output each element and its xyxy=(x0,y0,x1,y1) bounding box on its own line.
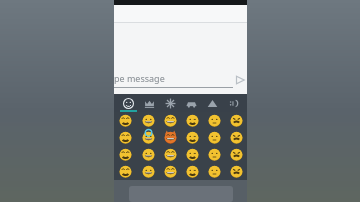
button[interactable]: Emoji 0 xyxy=(114,112,137,129)
button[interactable]: Emoji 18 xyxy=(114,163,137,180)
button[interactable]: Emoji 11 xyxy=(225,129,247,146)
button[interactable]: Emoji 22 xyxy=(203,163,225,180)
button[interactable]: Emoji 15 xyxy=(181,146,203,163)
button[interactable]: Emoji 19 xyxy=(137,163,159,180)
button[interactable]: Emoji 16 xyxy=(203,146,225,163)
button[interactable]: Emoji 14 xyxy=(159,146,181,163)
button[interactable]: Emoji 7 xyxy=(137,129,159,146)
button[interactable]: Emoji 20 xyxy=(159,163,181,180)
button[interactable]: Emoji category travel xyxy=(181,94,202,112)
button[interactable]: Emoji 17 xyxy=(225,146,247,163)
button[interactable]: Emoji 1 xyxy=(137,112,159,129)
button[interactable]: pe message xyxy=(114,68,247,92)
button[interactable]: Emoji 2 xyxy=(159,112,181,129)
button[interactable]: Emoticons xyxy=(223,94,244,112)
button[interactable]: Emoji 23 xyxy=(225,163,247,180)
button[interactable]: Emoji 8 xyxy=(159,129,181,146)
button[interactable]: Emoji 5 xyxy=(225,112,247,129)
staticText: pe message xyxy=(114,72,165,84)
button[interactable]: Emoji 3 xyxy=(181,112,203,129)
button[interactable]: Emoji category smileys xyxy=(117,94,139,112)
button[interactable]: Emoji category nature xyxy=(160,94,181,112)
button[interactable]: Emoji 21 xyxy=(181,163,203,180)
button[interactable]: Emoji 4 xyxy=(203,112,225,129)
button[interactable]: Emoji 12 xyxy=(114,146,137,163)
button[interactable]: Emoji 6 xyxy=(114,129,137,146)
button[interactable]: Emoji 9 xyxy=(181,129,203,146)
button[interactable]: Emoji category symbols xyxy=(202,94,223,112)
button[interactable]: Emoji 13 xyxy=(137,146,159,163)
button[interactable]: Send xyxy=(233,68,247,92)
button[interactable]: Emoji 10 xyxy=(203,129,225,146)
button[interactable]: Emoji category people xyxy=(139,94,160,112)
